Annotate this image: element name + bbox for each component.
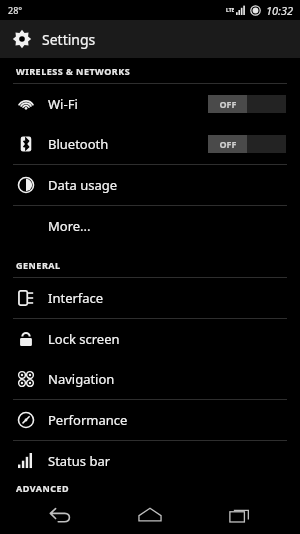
staticText: Bluetooth — [48, 135, 109, 153]
staticText: WIRELESS & NETWORKS — [16, 65, 131, 77]
button[interactable]: Navigation — [0, 359, 300, 399]
button[interactable]: Bluetooth — [0, 124, 300, 164]
staticText: OFF — [219, 98, 237, 110]
staticText: GENERAL — [16, 259, 61, 271]
button[interactable]: Performance — [0, 400, 300, 440]
staticText: Navigation — [48, 370, 115, 388]
button[interactable]: Home — [120, 495, 180, 534]
staticText: 10:32 — [266, 3, 294, 18]
staticText: Interface — [48, 289, 104, 307]
staticText: More... — [48, 217, 91, 235]
staticText: Performance — [48, 411, 128, 429]
button[interactable]: More... — [0, 206, 300, 246]
staticText: 28° — [8, 4, 23, 16]
button[interactable]: Recent apps — [210, 495, 270, 534]
button[interactable]: Toggle off — [208, 135, 286, 153]
staticText: Settings — [42, 30, 96, 49]
button[interactable]: Interface — [0, 278, 300, 318]
button[interactable]: Settings — [0, 20, 300, 58]
button[interactable]: Status bar — [0, 441, 300, 481]
button[interactable]: Lock screen — [0, 319, 300, 359]
staticText: OFF — [219, 138, 237, 150]
staticText: Lock screen — [48, 330, 120, 348]
staticText: LTE — [226, 7, 235, 14]
staticText: Data usage — [48, 176, 118, 194]
button[interactable]: Data usage — [0, 165, 300, 205]
button[interactable]: Wi-Fi — [0, 84, 300, 124]
staticText: Status bar — [48, 452, 111, 470]
staticText: Wi-Fi — [48, 95, 78, 113]
button[interactable]: Back — [30, 495, 90, 534]
button[interactable]: Toggle off — [208, 95, 286, 113]
staticText: ADVANCED — [16, 482, 70, 494]
